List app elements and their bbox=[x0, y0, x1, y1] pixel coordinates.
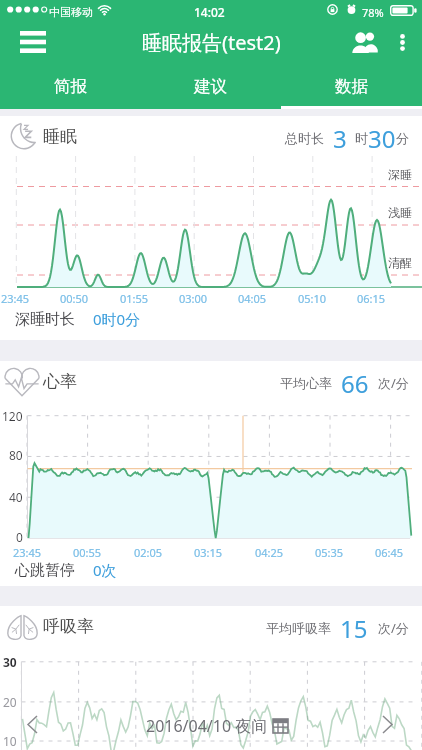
staticText: 深睡 bbox=[388, 167, 412, 182]
staticText: 心跳暂停 bbox=[15, 561, 75, 580]
staticText: 简报 bbox=[54, 76, 87, 97]
staticText: 00:55 bbox=[73, 545, 102, 560]
staticText: 10 bbox=[3, 733, 17, 749]
button[interactable]: 建议 bbox=[140, 64, 281, 109]
staticText: 03:15 bbox=[194, 545, 223, 560]
button[interactable]: 数据 bbox=[281, 64, 422, 109]
staticText: 20 bbox=[3, 694, 17, 710]
button[interactable]: Next day bbox=[373, 710, 402, 739]
staticText: 数据 bbox=[335, 76, 368, 97]
staticText: 15 bbox=[340, 612, 368, 644]
staticText: 时 bbox=[355, 130, 368, 146]
staticText: 00:50 bbox=[60, 291, 89, 306]
staticText: 0时0分 bbox=[93, 309, 141, 329]
button[interactable]: 简报 bbox=[0, 64, 140, 109]
staticText: 浅睡 bbox=[388, 205, 412, 220]
staticText: 23:45 bbox=[1, 291, 30, 306]
staticText: 心率 bbox=[43, 371, 77, 392]
staticText: 66 bbox=[341, 367, 369, 399]
staticText: 03:00 bbox=[179, 291, 208, 306]
staticText: 平均呼吸率 bbox=[266, 620, 331, 636]
staticText: 30 bbox=[3, 654, 17, 670]
staticText: 120 bbox=[2, 408, 23, 424]
staticText: 深睡时长 bbox=[15, 310, 75, 329]
button[interactable]: Menu bbox=[8, 20, 58, 64]
staticText: 04:05 bbox=[238, 291, 267, 306]
staticText: 02:05 bbox=[134, 545, 163, 560]
staticText: 30 bbox=[368, 122, 396, 154]
button[interactable]: 2016/04/10 夜间 bbox=[146, 713, 289, 739]
staticText: 0次 bbox=[93, 560, 117, 580]
staticText: 14:02 bbox=[194, 4, 225, 20]
staticText: 睡眠 bbox=[43, 126, 77, 147]
staticText: 2016/04/10 夜间 bbox=[146, 715, 268, 737]
staticText: 中国移动 bbox=[49, 5, 93, 19]
staticText: 05:10 bbox=[298, 291, 327, 306]
staticText: 分 bbox=[396, 130, 409, 146]
staticText: 23:45 bbox=[13, 545, 42, 560]
button[interactable]: Friends bbox=[345, 20, 385, 64]
staticText: 次/分 bbox=[378, 619, 409, 637]
staticText: 06:15 bbox=[357, 291, 386, 306]
staticText: 平均心率 bbox=[280, 375, 332, 391]
button[interactable]: Previous day bbox=[18, 710, 47, 739]
staticText: 40 bbox=[9, 489, 23, 505]
staticText: 建议 bbox=[194, 76, 227, 97]
staticText: 80 bbox=[9, 447, 23, 463]
staticText: 清醒 bbox=[388, 255, 412, 270]
staticText: 睡眠报告(test2) bbox=[142, 29, 281, 56]
staticText: 06:45 bbox=[375, 545, 404, 560]
staticText: 次/分 bbox=[378, 374, 409, 392]
staticText: 3 bbox=[333, 122, 347, 154]
staticText: 04:25 bbox=[255, 545, 284, 560]
button[interactable]: More options bbox=[386, 20, 418, 64]
staticText: 0 bbox=[16, 529, 23, 545]
staticText: 呼吸率 bbox=[43, 616, 94, 637]
staticText: 01:55 bbox=[120, 291, 149, 306]
staticText: 05:35 bbox=[315, 545, 344, 560]
staticText: 总时长 bbox=[285, 130, 324, 146]
staticText: 78% bbox=[362, 5, 384, 20]
